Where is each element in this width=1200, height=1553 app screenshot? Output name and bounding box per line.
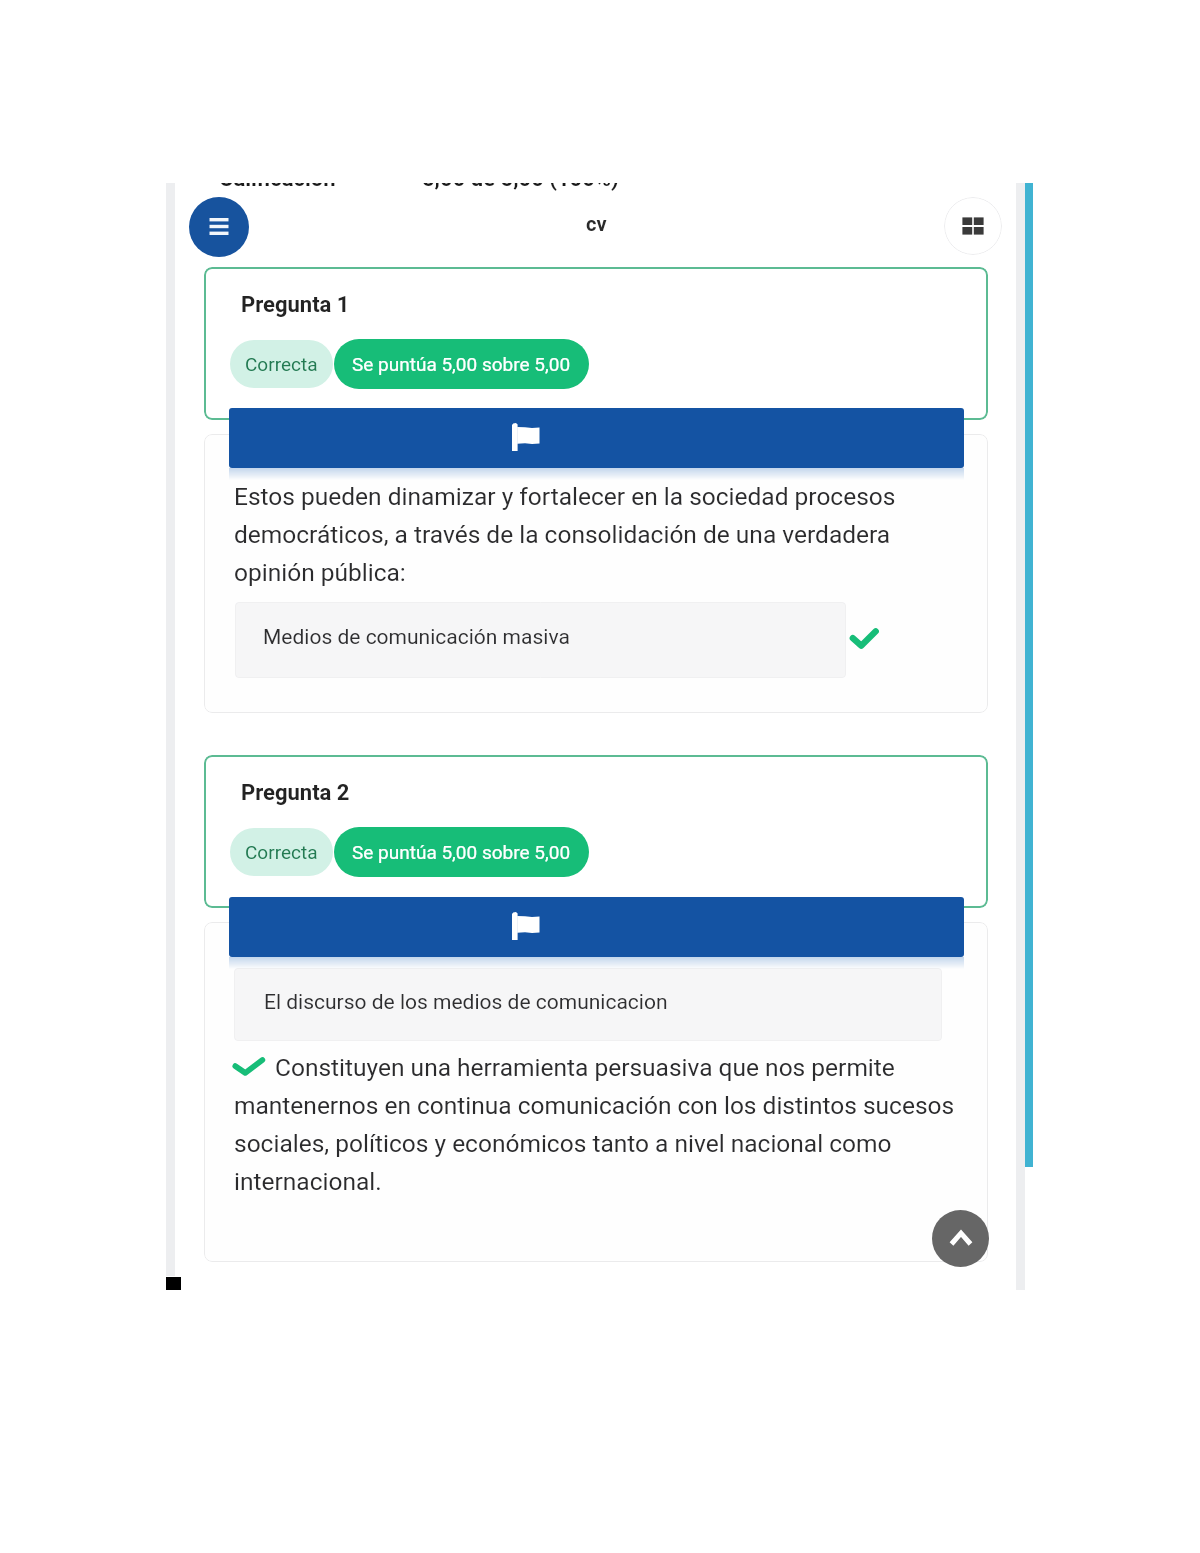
button[interactable]: Flag question xyxy=(229,897,964,957)
button[interactable]: Menu xyxy=(189,197,249,257)
staticText: Se puntúa 5,00 sobre 5,00 xyxy=(352,353,571,375)
button[interactable]: Se puntúa 5,00 sobre 5,00 xyxy=(334,339,589,389)
staticText: Estos pueden dinamizar y fortalecer en l… xyxy=(234,482,896,511)
button[interactable]: El discurso de los medios de comunicacio… xyxy=(234,968,942,1041)
staticText: democráticos, a través de la consolidaci… xyxy=(234,520,891,549)
staticText: Constituyen una herramienta persuasiva q… xyxy=(275,1053,895,1082)
staticText: Pregunta 1 xyxy=(241,292,350,318)
button[interactable]: Flag question xyxy=(229,408,964,468)
staticText: Se puntúa 5,00 sobre 5,00 xyxy=(352,841,571,863)
staticText: Medios de comunicación masiva xyxy=(263,625,570,650)
staticText: internacional. xyxy=(234,1167,382,1196)
staticText: Calificación xyxy=(219,166,336,192)
staticText: mantenernos en continua comunicación con… xyxy=(234,1091,955,1120)
staticText: cv xyxy=(586,212,607,235)
button[interactable]: Correcta xyxy=(230,828,333,876)
button[interactable]: Medios de comunicación masiva xyxy=(235,602,846,678)
button[interactable]: Se puntúa 5,00 sobre 5,00 xyxy=(334,827,589,877)
staticText: 5,00 de 5,00 (100%) xyxy=(422,166,619,192)
staticText: Correcta xyxy=(245,841,318,863)
staticText: Correcta xyxy=(245,353,318,375)
staticText: El discurso de los medios de comunicacio… xyxy=(264,990,668,1015)
button[interactable]: Grid view xyxy=(944,197,1002,255)
button[interactable]: Correcta xyxy=(230,340,333,388)
button[interactable]: Scroll to top xyxy=(932,1210,989,1267)
staticText: Pregunta 2 xyxy=(241,780,350,806)
staticText: opinión pública: xyxy=(234,558,406,587)
staticText: sociales, políticos y económicos tanto a… xyxy=(234,1129,892,1158)
